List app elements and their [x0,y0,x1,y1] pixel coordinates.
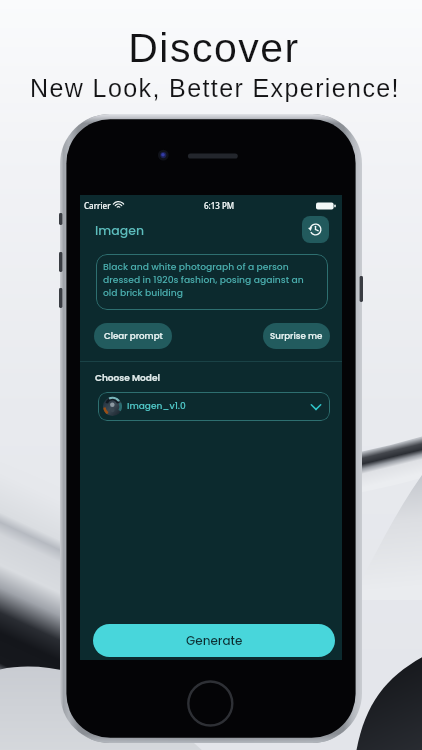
staticText: Imagen_v1.0 [127,400,186,413]
button[interactable]: Imagen [95,222,145,239]
staticText: 6:13 PM [204,200,235,211]
staticText: Generate [186,632,243,649]
staticText: New Look, Better Experience! [4,74,422,102]
staticText: Discover [3,25,422,71]
staticText: Black and white photograph of a person d… [103,260,316,299]
staticText: Carrier [84,200,111,211]
button[interactable]: Black and white photograph of a person d… [96,254,328,310]
button[interactable]: Generate [93,624,335,657]
staticText: Choose Model [95,372,160,385]
staticText: Clear prompt [104,330,163,342]
button[interactable]: History [302,216,329,243]
button[interactable]: Clear prompt [94,323,172,349]
button[interactable]: Imagen_v1.0 [98,392,330,421]
staticText: Surprise me [270,330,323,342]
button[interactable]: Surprise me [263,323,330,349]
staticText: Imagen [95,222,145,239]
